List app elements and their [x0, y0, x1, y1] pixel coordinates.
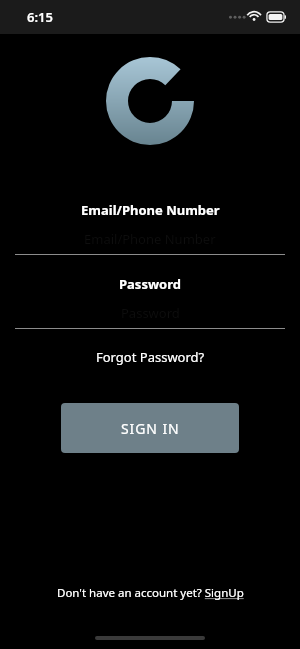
staticText: Email/Phone Number	[84, 230, 216, 248]
button[interactable]: Don't have an account yet? SignUp	[0, 579, 300, 607]
other: App logo	[106, 56, 194, 146]
staticText: Forgot Password?	[96, 348, 205, 366]
staticText: Password	[119, 275, 181, 293]
button[interactable]: SIGN IN	[61, 403, 239, 453]
staticText: Don't have an account yet? SignUp	[57, 585, 244, 601]
staticText: SIGN IN	[121, 419, 180, 438]
staticText: 6:15	[27, 8, 53, 26]
button[interactable]: Forgot Password?	[0, 344, 300, 370]
staticText: Password	[121, 304, 180, 322]
staticText: Email/Phone Number	[81, 201, 220, 219]
